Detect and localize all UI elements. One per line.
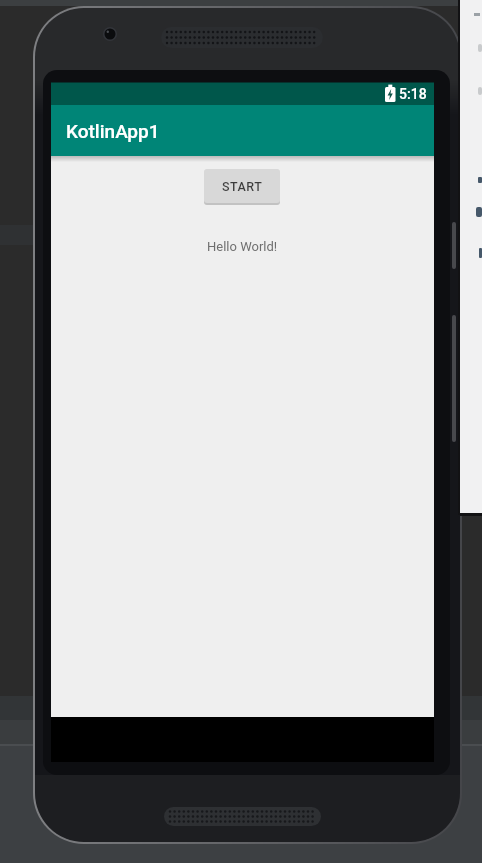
staticText: START bbox=[222, 179, 263, 194]
staticText: Hello World! bbox=[207, 239, 278, 254]
button[interactable]: START bbox=[204, 169, 280, 203]
staticText: 5:18 bbox=[399, 86, 427, 102]
staticText: KotlinApp1 bbox=[66, 120, 160, 142]
